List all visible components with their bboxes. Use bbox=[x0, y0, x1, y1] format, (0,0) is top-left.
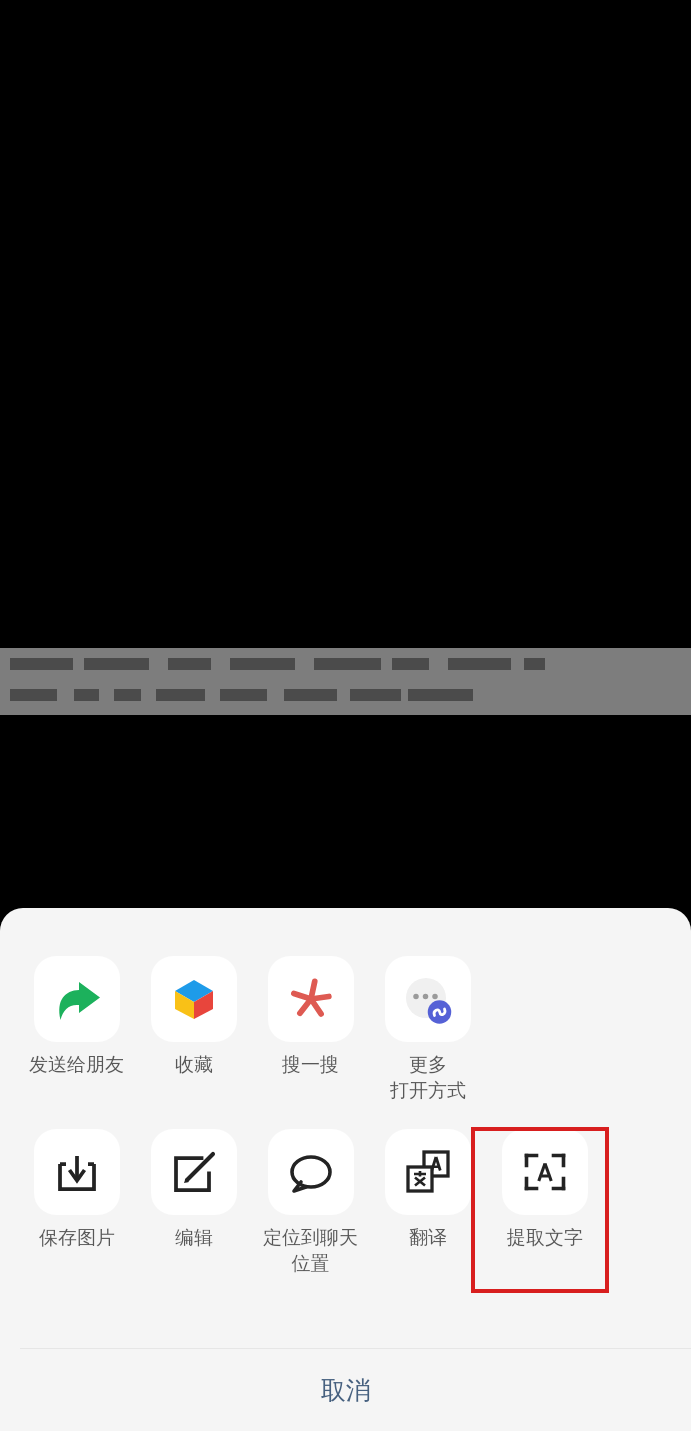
button[interactable]: Search bbox=[252, 956, 369, 1077]
staticText: 翻译 bbox=[409, 1226, 447, 1250]
button[interactable]: 取消 bbox=[0, 1349, 691, 1431]
other: Save image bbox=[52, 1147, 102, 1197]
button[interactable]: Extract text bbox=[486, 1129, 603, 1250]
button[interactable]: Edit bbox=[135, 1129, 252, 1250]
other: Locate in chat bbox=[286, 1147, 336, 1197]
staticText: 定位到聊天 位置 bbox=[263, 1226, 358, 1275]
button[interactable]: More ways to open bbox=[369, 956, 486, 1102]
button[interactable]: Locate in chat bbox=[252, 1129, 369, 1275]
staticText: 更多 打开方式 bbox=[390, 1053, 466, 1102]
staticText: 编辑 bbox=[175, 1226, 213, 1250]
other: Translate bbox=[403, 1147, 453, 1197]
button[interactable]: Translate bbox=[369, 1129, 486, 1250]
button[interactable]: Favorite bbox=[135, 956, 252, 1077]
staticText: 收藏 bbox=[175, 1053, 213, 1077]
button[interactable]: Save image bbox=[18, 1129, 135, 1250]
staticText: 发送给朋友 bbox=[29, 1053, 124, 1077]
other: Search bbox=[286, 974, 336, 1024]
staticText: 保存图片 bbox=[39, 1226, 115, 1250]
button[interactable]: Send to friend bbox=[18, 956, 135, 1077]
other: Favorite bbox=[169, 974, 219, 1024]
other: Edit bbox=[169, 1147, 219, 1197]
other: Extract text bbox=[520, 1147, 570, 1197]
staticText: 取消 bbox=[321, 1375, 371, 1406]
other: Send to friend bbox=[52, 974, 102, 1024]
staticText: 搜一搜 bbox=[282, 1053, 339, 1077]
staticText: 提取文字 bbox=[507, 1226, 583, 1250]
other: More ways to open bbox=[403, 974, 453, 1024]
